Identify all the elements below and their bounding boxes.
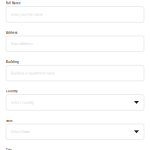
button[interactable]: Select Country [6, 95, 144, 110]
staticText: Enter your full name [11, 12, 43, 17]
staticText: Full Name [6, 1, 21, 5]
button[interactable]: Select State [6, 124, 144, 140]
button[interactable]: Enter Address [6, 36, 144, 52]
staticText: Enter Address [11, 41, 33, 46]
staticText: Address [6, 31, 17, 34]
staticText: Select Country [11, 100, 34, 105]
staticText: State [6, 119, 13, 122]
staticText: Country [6, 89, 17, 93]
staticText: City [6, 148, 11, 150]
staticText: Select State [11, 129, 30, 134]
button[interactable]: Building or apartment name [6, 65, 144, 81]
staticText: Building or apartment name [11, 71, 55, 75]
staticText: Building [6, 60, 19, 64]
